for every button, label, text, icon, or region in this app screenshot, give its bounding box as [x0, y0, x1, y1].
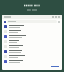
button[interactable] [2, 59, 62, 64]
button[interactable]: App icon [4, 21, 6, 23]
button[interactable] [2, 54, 62, 59]
button[interactable] [2, 29, 62, 34]
button[interactable]: Search [7, 20, 57, 23]
button[interactable] [2, 49, 62, 54]
button[interactable] [2, 39, 62, 44]
button[interactable] [2, 24, 62, 29]
button[interactable] [2, 34, 62, 39]
button[interactable]: Learn more link [50, 65, 60, 68]
button[interactable] [2, 44, 62, 49]
